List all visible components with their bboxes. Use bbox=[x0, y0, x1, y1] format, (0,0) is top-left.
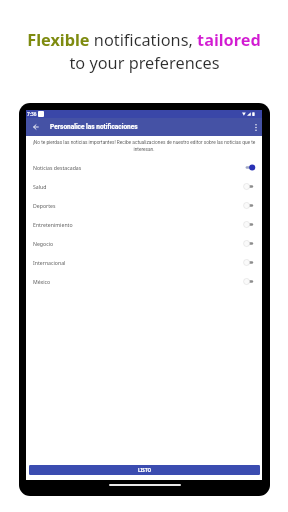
staticText: México bbox=[33, 278, 51, 285]
staticText: Salud bbox=[33, 183, 47, 190]
staticText: Negocio bbox=[33, 240, 54, 247]
button[interactable]: Back bbox=[30, 118, 42, 136]
button[interactable]: More options bbox=[250, 118, 262, 136]
button[interactable]: Deportes bbox=[26, 196, 262, 215]
button[interactable]: Internacional bbox=[26, 253, 262, 272]
staticText: LISTO bbox=[138, 467, 152, 473]
button[interactable]: Salud bbox=[26, 177, 262, 196]
button[interactable]: Negocio bbox=[26, 234, 262, 253]
button[interactable]: Noticias destacadas bbox=[26, 158, 262, 177]
staticText: Noticias destacadas bbox=[33, 164, 82, 171]
staticText: ¡No te pierdas las noticias importantes!… bbox=[32, 140, 256, 152]
staticText: Flexible notifications, tailored bbox=[27, 29, 261, 51]
staticText: Deportes bbox=[33, 202, 56, 209]
staticText: to your preferences bbox=[69, 52, 220, 74]
staticText: 7:36 bbox=[27, 111, 37, 118]
staticText: Entretenimiento bbox=[33, 221, 73, 228]
staticText: Personalice las notificaciones bbox=[50, 123, 138, 131]
button[interactable]: LISTO bbox=[29, 465, 260, 475]
button[interactable]: Entretenimiento bbox=[26, 215, 262, 234]
staticText: Internacional bbox=[33, 259, 66, 266]
button[interactable]: México bbox=[26, 272, 262, 291]
